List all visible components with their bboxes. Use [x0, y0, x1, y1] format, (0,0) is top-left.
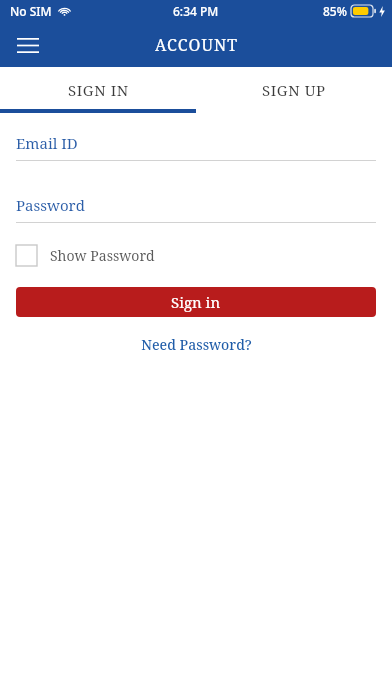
staticText: ACCOUNT	[155, 34, 238, 56]
button[interactable]: SIGN IN	[0, 67, 196, 113]
staticText: Password	[16, 195, 85, 215]
staticText: Sign in	[171, 292, 221, 312]
staticText: SIGN IN	[68, 80, 129, 100]
staticText: No SIM	[10, 3, 52, 19]
button[interactable]: Show Password	[16, 243, 155, 268]
staticText: 6:34 PM	[173, 3, 219, 19]
staticText: Need Password?	[141, 335, 252, 354]
button[interactable]: SIGN UP	[196, 67, 392, 113]
staticText: Show Password	[50, 246, 155, 265]
staticText: 85%	[323, 3, 347, 19]
button[interactable]: Open navigation menu	[6, 23, 50, 67]
button[interactable]: Sign in	[16, 287, 376, 317]
button[interactable]: Need Password?	[16, 335, 376, 354]
staticText: Email ID	[16, 133, 78, 153]
staticText: SIGN UP	[262, 80, 326, 100]
